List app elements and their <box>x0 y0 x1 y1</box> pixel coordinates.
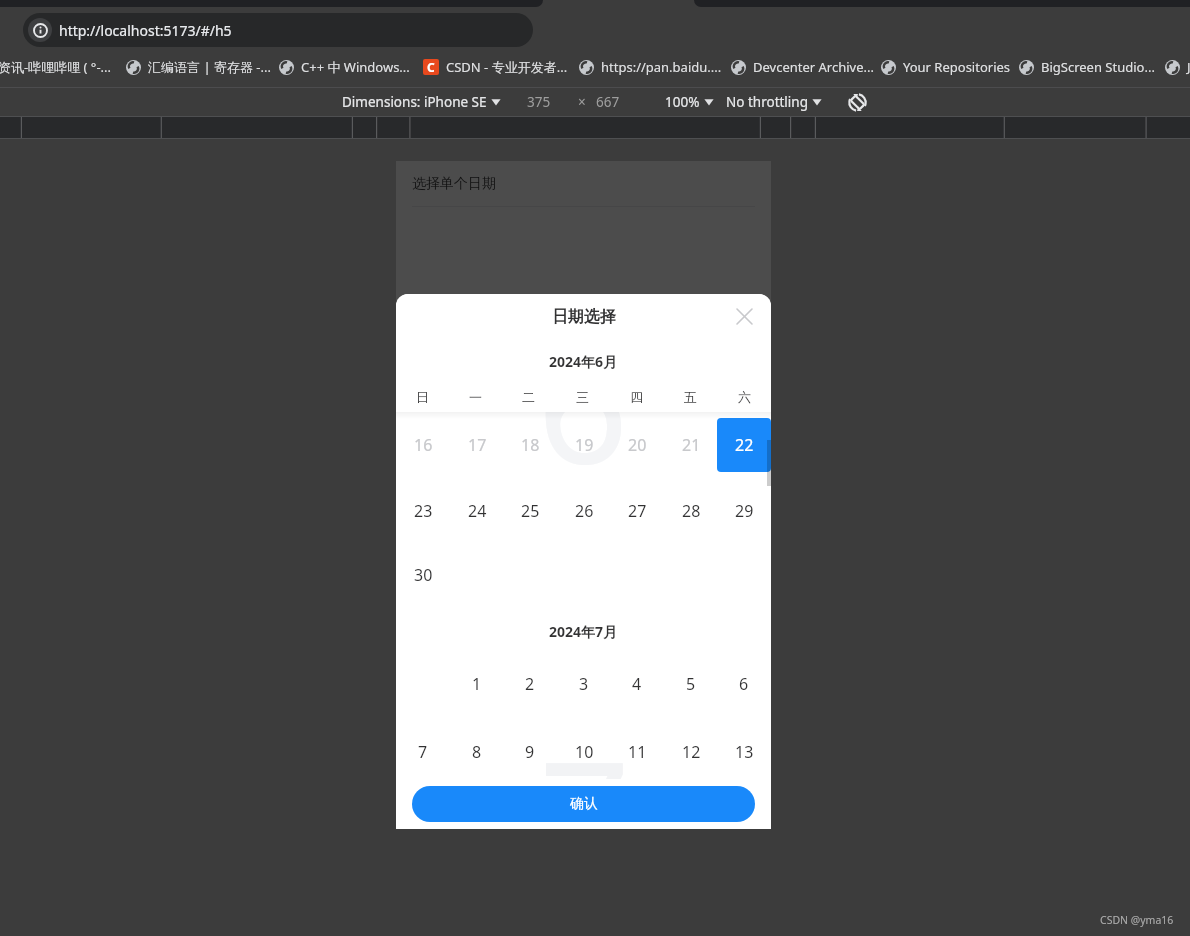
button[interactable]: 100% <box>665 88 714 116</box>
button[interactable]: 28 <box>664 484 718 538</box>
staticText: CSDN - 专业开发者... <box>446 58 568 76</box>
staticText: Devcenter Archive... <box>753 58 874 76</box>
button[interactable]: 11 <box>610 725 664 779</box>
button[interactable]: Site information <box>23 13 533 47</box>
staticText: 六 <box>738 389 751 405</box>
staticText: 18 <box>521 434 540 456</box>
button[interactable]: 16 <box>396 418 450 472</box>
staticText: 16 <box>414 434 433 456</box>
staticText: 一 <box>469 389 482 405</box>
button[interactable]: 26 <box>557 484 611 538</box>
staticText: http://localhost:5173/#/h5 <box>59 21 232 40</box>
button[interactable]: 9 <box>503 725 557 779</box>
staticText: 23 <box>414 500 433 522</box>
staticText: CSDN @yma16 <box>1100 913 1174 927</box>
button[interactable]: Devcenter Archive... <box>731 54 874 80</box>
staticText: 375 <box>527 93 551 111</box>
staticText: 7 <box>539 706 631 779</box>
button[interactable]: 29 <box>717 484 771 538</box>
button[interactable]: 资讯-哔哩哔哩 ( °-... <box>0 54 112 80</box>
button[interactable]: 24 <box>450 484 504 538</box>
staticText: 6 <box>739 673 749 695</box>
staticText: 确认 <box>570 795 598 813</box>
button[interactable]: 22 <box>717 418 771 472</box>
staticText: 11 <box>628 741 647 763</box>
staticText: 四 <box>630 389 643 405</box>
staticText: 7 <box>418 741 428 763</box>
button[interactable]: 10 <box>557 725 611 779</box>
staticText: 20 <box>628 434 647 456</box>
button[interactable]: Your Repositories <box>881 54 1011 80</box>
button[interactable]: 20 <box>610 418 664 472</box>
button[interactable]: 23 <box>396 484 450 538</box>
button[interactable]: C <box>423 54 568 80</box>
button[interactable]: 13 <box>717 725 771 779</box>
button[interactable]: 8 <box>450 725 504 779</box>
button[interactable]: 3 <box>557 657 611 711</box>
button[interactable]: 18 <box>503 418 557 472</box>
button[interactable]: 30 <box>396 548 450 602</box>
staticText: Your Repositories <box>903 58 1011 76</box>
staticText: 29 <box>735 500 754 522</box>
staticText: 1 <box>472 673 482 695</box>
button[interactable]: 4 <box>610 657 664 711</box>
staticText: 2 <box>525 673 535 695</box>
staticText: 10 <box>575 741 594 763</box>
staticText: 22 <box>735 434 754 456</box>
button[interactable]: 6 <box>717 657 771 711</box>
staticText: 21 <box>682 434 701 456</box>
staticText: 19 <box>575 434 594 456</box>
button[interactable]: Close <box>722 294 766 338</box>
staticText: 26 <box>575 500 594 522</box>
staticText: 13 <box>735 741 754 763</box>
button[interactable]: 17 <box>450 418 504 472</box>
button[interactable]: 1 <box>450 657 504 711</box>
staticText: BigScreen Studio... <box>1041 58 1155 76</box>
button[interactable]: BigScreen Studio... <box>1019 54 1155 80</box>
staticText: 汇编语言 | 寄存器 -... <box>148 58 271 76</box>
button[interactable]: No throttling <box>726 88 822 116</box>
staticText: 6 <box>537 398 629 510</box>
button[interactable]: 25 <box>503 484 557 538</box>
button[interactable]: Toggle device orientation <box>845 90 869 114</box>
staticText: C++ 中 Windows... <box>301 58 410 76</box>
button[interactable]: J <box>1165 54 1190 80</box>
staticText: 27 <box>628 500 647 522</box>
staticText: 选择单个日期 <box>412 175 496 193</box>
staticText: 28 <box>682 500 701 522</box>
button[interactable]: Dimensions: iPhone SE <box>342 88 501 116</box>
staticText: Dimensions: iPhone SE <box>342 93 487 111</box>
button[interactable]: 确认 <box>412 786 755 822</box>
staticText: No throttling <box>726 93 808 111</box>
staticText: 9 <box>525 741 535 763</box>
staticText: 二 <box>522 389 535 405</box>
staticText: 3 <box>579 673 589 695</box>
staticText: 2024年7月 <box>549 622 618 641</box>
staticText: × <box>578 93 586 111</box>
staticText: J <box>1187 58 1190 76</box>
staticText: 25 <box>521 500 540 522</box>
button[interactable]: Site information <box>28 18 52 42</box>
button[interactable]: 2 <box>503 657 557 711</box>
staticText: C <box>427 59 435 75</box>
button[interactable]: 汇编语言 | 寄存器 -... <box>126 54 271 80</box>
button[interactable]: 21 <box>664 418 718 472</box>
button[interactable]: 7 <box>396 725 450 779</box>
staticText: https://pan.baidu.... <box>601 58 722 76</box>
button[interactable]: 选择单个日期 <box>396 161 771 206</box>
staticText: 100% <box>665 93 700 111</box>
button[interactable]: https://pan.baidu.... <box>579 54 722 80</box>
button[interactable]: 27 <box>610 484 664 538</box>
staticText: 5 <box>686 673 696 695</box>
button[interactable]: 19 <box>557 418 611 472</box>
staticText: 667 <box>596 93 620 111</box>
button[interactable]: C++ 中 Windows... <box>279 54 410 80</box>
button[interactable]: 5 <box>664 657 718 711</box>
staticText: 三 <box>576 389 589 405</box>
staticText: 五 <box>684 389 697 405</box>
staticText: 12 <box>682 741 701 763</box>
staticText: 日 <box>416 389 429 405</box>
staticText: 日期选择 <box>552 307 616 327</box>
button[interactable]: 12 <box>664 725 718 779</box>
staticText: 17 <box>468 434 487 456</box>
